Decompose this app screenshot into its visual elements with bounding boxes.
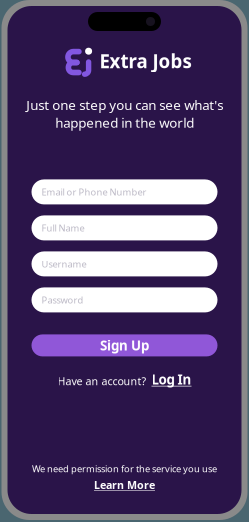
staticText: We need permission for the service you u… [32,462,217,475]
button[interactable]: Username [31,251,217,276]
staticText: Have an account? [57,374,146,388]
button[interactable]: Full Name [31,215,217,240]
button[interactable]: Email or Phone Number [31,179,217,204]
staticText: Sign Up [100,337,149,354]
button[interactable]: Sign Up [31,334,217,356]
staticText: Email or Phone Number [41,186,146,198]
staticText: Username [41,258,86,270]
button[interactable]: Password [31,287,217,312]
staticText: Extra Jobs [99,49,191,73]
button[interactable]: We need permission for the service you u… [32,462,217,492]
staticText: Just one step you can see what's happene… [26,96,223,131]
button[interactable]: Have an account? [57,370,191,388]
staticText: Learn More [94,478,155,492]
staticText: Full Name [41,222,84,234]
staticText: Password [41,294,83,306]
staticText: Log In [151,370,191,388]
